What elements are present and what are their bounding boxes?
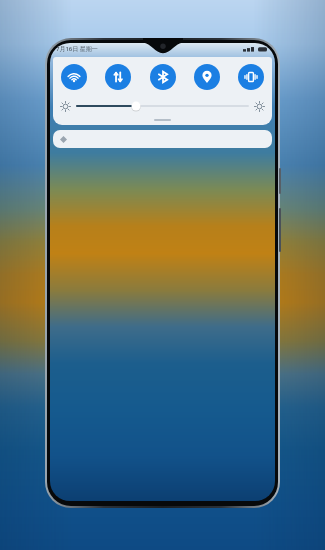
button[interactable]: Bluetooth (150, 64, 176, 90)
button[interactable]: Location (194, 64, 220, 90)
button[interactable]: Wi-Fi (61, 64, 87, 90)
button[interactable] (77, 100, 248, 112)
button[interactable] (53, 130, 272, 148)
button[interactable]: Vibrate (238, 64, 264, 90)
staticText: 7月16日 星期一 (56, 45, 98, 53)
button[interactable]: Mobile data (105, 64, 131, 90)
